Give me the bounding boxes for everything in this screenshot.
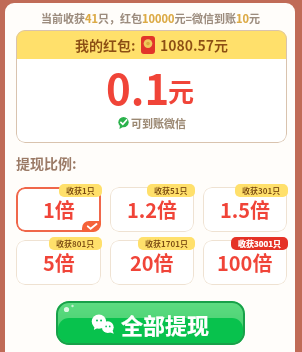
staticText: 提现比例: bbox=[16, 153, 77, 173]
button[interactable]: 1倍 bbox=[16, 187, 101, 232]
button[interactable]: 5倍 bbox=[16, 240, 101, 285]
staticText: 当前收获41只，红包10000元=微信到账10元 bbox=[41, 10, 260, 26]
staticText: 收获1只 bbox=[66, 185, 95, 197]
staticText: 20倍 bbox=[130, 248, 174, 277]
staticText: 收获801只 bbox=[56, 238, 95, 250]
staticText: 1.2倍 bbox=[127, 195, 178, 224]
staticText: 0.1 bbox=[106, 56, 170, 117]
staticText: 1倍 bbox=[43, 195, 75, 224]
staticText: 收获51只 bbox=[154, 185, 188, 197]
staticText: 可到账微信 bbox=[131, 115, 186, 131]
button[interactable]: 20倍 bbox=[110, 240, 194, 285]
button[interactable]: 1.5倍 bbox=[203, 187, 287, 232]
button[interactable]: 100倍 bbox=[203, 240, 287, 285]
button[interactable]: 全部提现 bbox=[56, 301, 245, 345]
staticText: 1.5倍 bbox=[220, 195, 271, 224]
staticText: 全部提现 bbox=[121, 308, 210, 340]
staticText: 收获1701只 bbox=[145, 238, 188, 250]
staticText: 5倍 bbox=[43, 248, 75, 277]
staticText: 元 bbox=[168, 72, 195, 110]
staticText: 我的红包: bbox=[75, 35, 136, 55]
staticText: 收获301只 bbox=[242, 185, 281, 197]
button[interactable]: 1.2倍 bbox=[110, 187, 194, 232]
staticText: 100倍 bbox=[217, 248, 273, 277]
staticText: 1080.57元 bbox=[160, 35, 229, 55]
other: Selected bbox=[82, 221, 101, 232]
staticText: 收获3001只 bbox=[238, 238, 281, 250]
